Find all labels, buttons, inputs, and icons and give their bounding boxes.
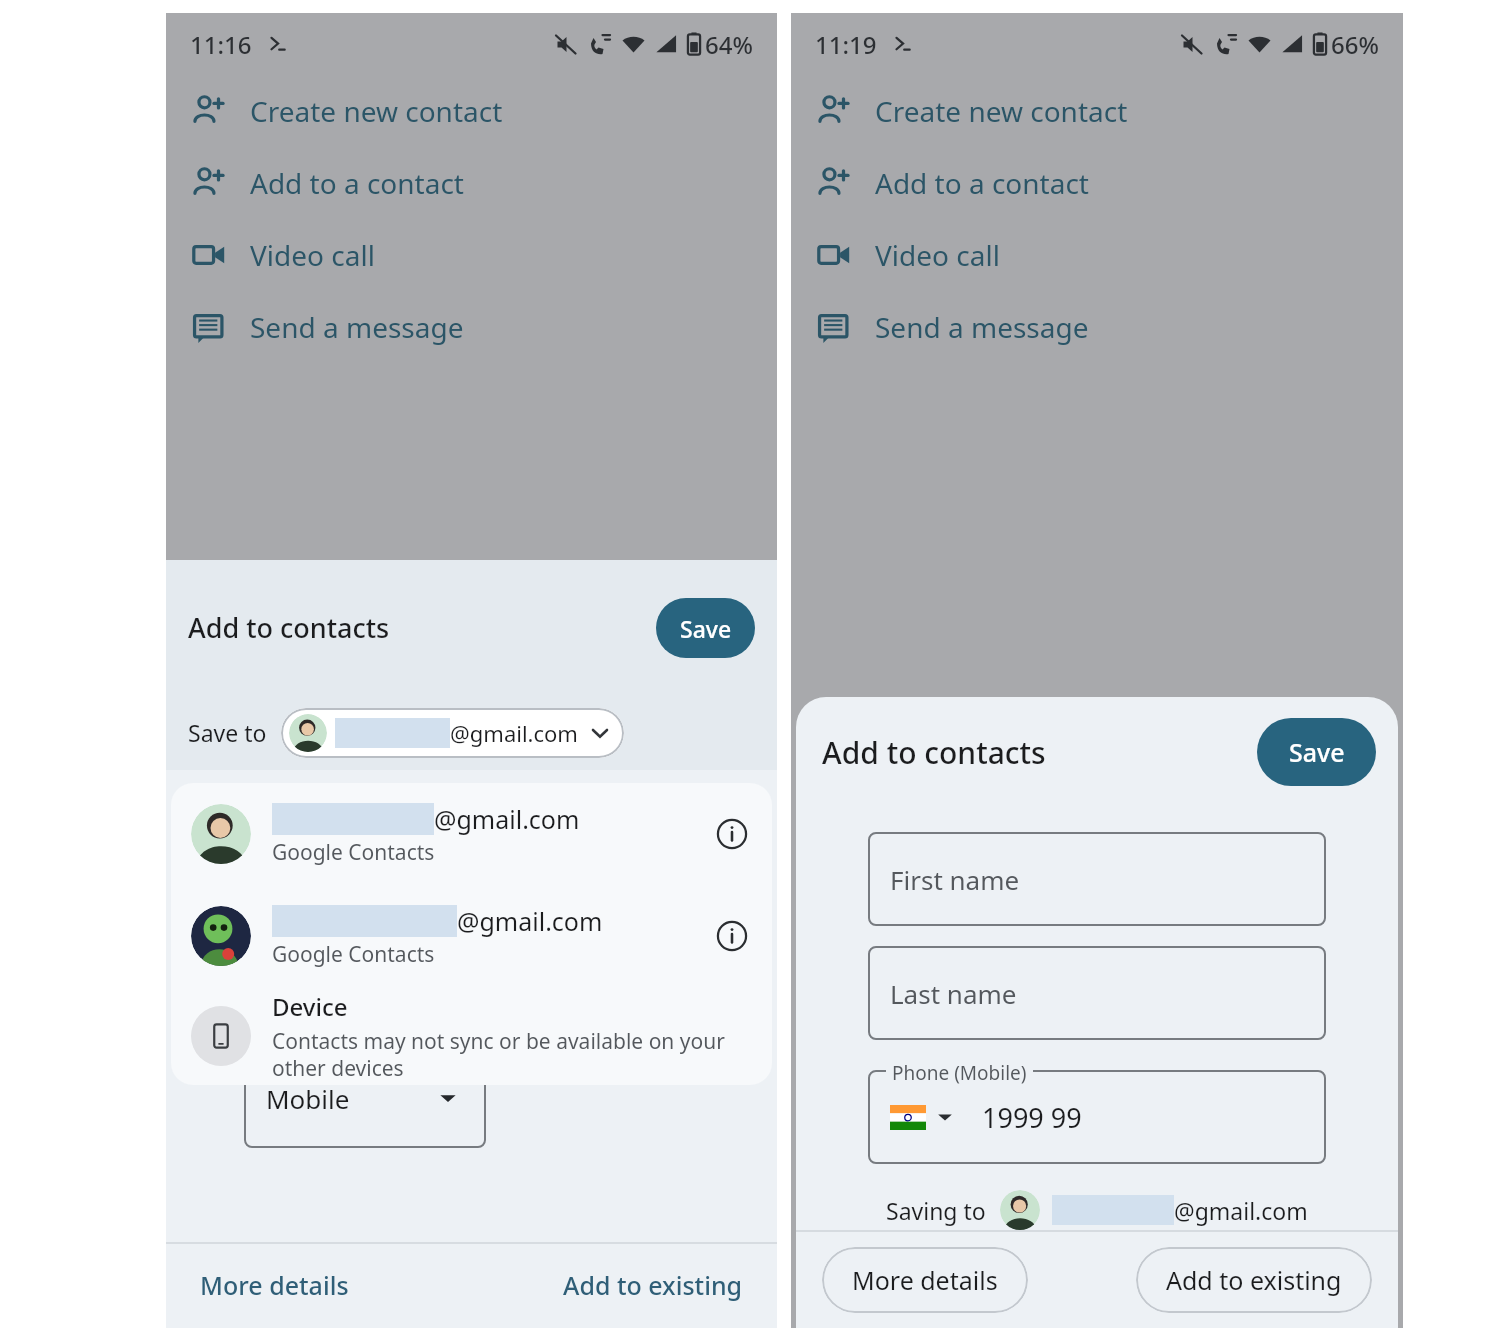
staticText: Save	[680, 613, 732, 644]
staticText: Google Contacts	[272, 838, 435, 867]
button[interactable]: Send a message	[791, 291, 1403, 363]
button[interactable]: Send a message	[166, 291, 777, 363]
staticText: More details	[852, 1263, 998, 1297]
button[interactable]: More details	[822, 1247, 1028, 1313]
button[interactable]: Account info	[710, 914, 754, 958]
staticText: Phone (Mobile)	[892, 1060, 1027, 1086]
staticText: Video call	[250, 236, 375, 274]
button[interactable]: Device	[171, 987, 772, 1085]
button[interactable]: @gmail.com	[171, 783, 772, 885]
staticText: 11:16	[190, 28, 252, 61]
staticText: Send a message	[250, 308, 464, 346]
staticText: Add to existing	[1166, 1263, 1342, 1297]
button[interactable]: @gmail.com	[171, 885, 772, 987]
staticText: Contacts may not sync or be available on…	[272, 1027, 725, 1082]
button[interactable]: Save	[656, 598, 755, 658]
button[interactable]: Video call	[166, 219, 777, 291]
staticText: Add to existing	[563, 1268, 743, 1302]
staticText: Create new contact	[250, 92, 503, 130]
staticText: 66%	[1331, 28, 1379, 61]
staticText: Mobile	[266, 1081, 350, 1116]
staticText: Saving to	[886, 1195, 986, 1226]
button[interactable]: Add to existing	[553, 1258, 753, 1312]
staticText: Last name	[890, 976, 1017, 1011]
staticText: Add to contacts	[822, 732, 1046, 773]
staticText: @gmail.com	[434, 802, 580, 836]
staticText: Add to contacts	[188, 609, 390, 646]
button[interactable]: Add to a contact	[166, 147, 777, 219]
button[interactable]: Add to existing	[1136, 1247, 1372, 1313]
staticText: Send a message	[875, 308, 1089, 346]
button[interactable]: @gmail.com	[281, 708, 624, 758]
staticText: @gmail.com	[450, 718, 578, 748]
button[interactable]: First name	[868, 832, 1326, 926]
button[interactable]: Create new contact	[791, 75, 1403, 147]
staticText: Add to a contact	[875, 164, 1089, 202]
staticText: Label	[264, 1039, 310, 1064]
staticText: 1999 99	[982, 1099, 1082, 1136]
button[interactable]: Save	[1257, 718, 1376, 786]
staticText: @gmail.com	[1174, 1195, 1308, 1226]
button[interactable]: Account info	[710, 812, 754, 856]
button[interactable]: Create new contact	[166, 75, 777, 147]
staticText: Save	[1289, 735, 1345, 769]
staticText: 11:19	[815, 28, 877, 61]
button[interactable]: Last name	[868, 946, 1326, 1040]
staticText: More details	[200, 1268, 349, 1302]
button[interactable]	[868, 1070, 1326, 1164]
staticText: Device	[272, 990, 348, 1023]
button[interactable]	[244, 1048, 486, 1148]
staticText: Video call	[875, 236, 1000, 274]
staticText: Create new contact	[875, 92, 1128, 130]
staticText: 64%	[705, 28, 753, 61]
staticText: @gmail.com	[457, 904, 603, 938]
staticText: First name	[890, 862, 1020, 897]
staticText: Save to	[188, 717, 267, 748]
button[interactable]: Video call	[791, 219, 1403, 291]
staticText: Add to a contact	[250, 164, 464, 202]
button[interactable]: More details	[190, 1258, 359, 1312]
button[interactable]: Add to a contact	[791, 147, 1403, 219]
staticText: Google Contacts	[272, 940, 435, 969]
